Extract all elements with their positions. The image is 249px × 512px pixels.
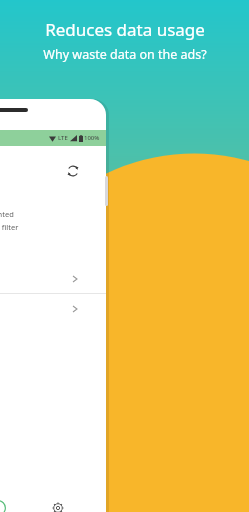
staticText: Why waste data on the ads?	[43, 46, 207, 63]
staticText: 100%	[84, 134, 100, 142]
staticText: Reduces data usage	[45, 18, 205, 41]
button[interactable]: Refresh	[58, 156, 87, 185]
staticText: based on the filter	[0, 222, 19, 232]
button[interactable]	[0, 264, 106, 293]
staticText: blocks unwanted	[0, 209, 14, 219]
staticText: LTE	[58, 134, 68, 142]
button[interactable]: Settings	[49, 499, 67, 512]
button[interactable]	[0, 294, 106, 323]
